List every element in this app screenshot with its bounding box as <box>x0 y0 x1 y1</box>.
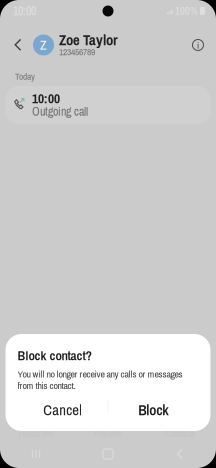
staticText: Cancel <box>43 400 82 420</box>
staticText: 10:00 <box>13 3 36 19</box>
button[interactable]: Recent apps <box>0 440 72 468</box>
staticText: 100% <box>175 4 198 18</box>
staticText: Today <box>15 70 35 83</box>
button[interactable]: 10:00 <box>0 86 216 124</box>
staticText: from this contact. <box>17 379 75 392</box>
staticText: Outgoing call <box>32 103 88 120</box>
button[interactable]: Contact details <box>186 27 210 63</box>
button[interactable]: Contacts <box>144 427 216 440</box>
button[interactable]: Back <box>8 27 28 63</box>
button[interactable]: Favourites <box>0 427 72 440</box>
button[interactable]: Cancel <box>17 398 108 422</box>
staticText: Z <box>40 36 47 54</box>
staticText: Zoe Taylor <box>59 30 118 50</box>
staticText: Favourites <box>18 427 53 440</box>
staticText: You will no longer receive any calls or … <box>17 367 182 381</box>
staticText: Block contact? <box>17 346 91 364</box>
staticText: Contacts <box>165 427 195 440</box>
button[interactable]: Recents <box>72 427 144 440</box>
button[interactable]: Back <box>144 440 216 468</box>
button[interactable]: Block <box>108 398 198 422</box>
staticText: i <box>197 39 199 52</box>
staticText: Block <box>138 400 168 420</box>
staticText: Recents <box>94 427 122 440</box>
staticText: 10:00 <box>32 89 60 107</box>
staticText: 123456789 <box>59 46 95 58</box>
